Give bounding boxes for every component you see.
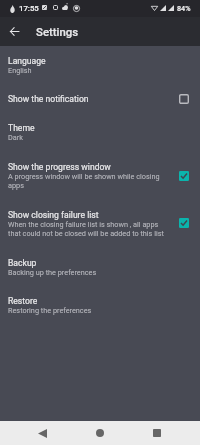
- button[interactable]: Restore: [0, 296, 200, 315]
- button[interactable]: Show closing failure list: [0, 210, 200, 238]
- staticText: English: [8, 66, 32, 75]
- button[interactable]: Language: [0, 56, 200, 75]
- staticText: Dark: [8, 133, 23, 142]
- staticText: Theme: [8, 123, 35, 133]
- button[interactable]: Back: [21, 421, 61, 445]
- staticText: Show the notification: [8, 94, 89, 104]
- button[interactable]: Back: [0, 17, 29, 46]
- button[interactable]: Show the progress window: [0, 162, 200, 190]
- staticText: Show the progress window: [8, 162, 111, 172]
- staticText: When the closing failure list is shown ,…: [8, 220, 172, 238]
- button[interactable]: Recents: [137, 421, 177, 445]
- button[interactable]: Backup: [0, 258, 200, 277]
- staticText: Restoring the preferences: [8, 306, 92, 315]
- staticText: Language: [8, 56, 46, 66]
- button[interactable]: Theme: [0, 123, 200, 142]
- staticText: A progress window will be shown while cl…: [8, 172, 172, 190]
- staticText: 17:55: [19, 4, 39, 13]
- staticText: Restore: [8, 296, 38, 306]
- staticText: 84%: [177, 4, 191, 12]
- button[interactable]: Show the notification: [0, 90, 200, 108]
- staticText: Backing up the preferences: [8, 268, 97, 277]
- staticText: Show closing failure list: [8, 210, 99, 220]
- staticText: Settings: [36, 25, 79, 38]
- staticText: Backup: [8, 258, 37, 268]
- button[interactable]: Home: [80, 421, 120, 445]
